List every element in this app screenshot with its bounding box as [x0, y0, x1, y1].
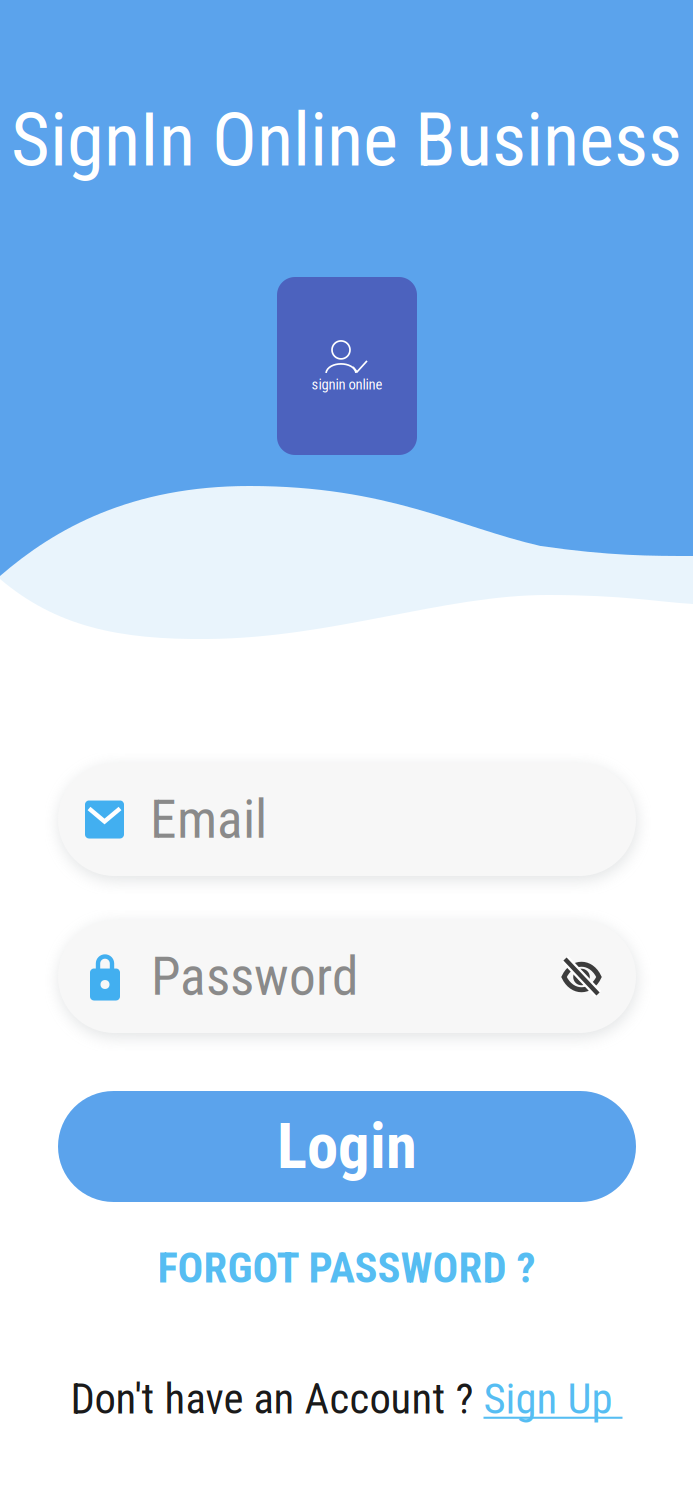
- staticText: SignIn Online Business: [11, 96, 682, 184]
- staticText: signin online: [311, 376, 382, 393]
- button[interactable]: FORGOT PASSWORD ?: [0, 1245, 693, 1291]
- button[interactable]: Password: [58, 920, 636, 1033]
- staticText: Login: [277, 1110, 417, 1183]
- staticText: Email: [150, 788, 267, 851]
- staticText: Don't have an Account ?: [70, 1374, 483, 1424]
- staticText: Password: [151, 945, 358, 1008]
- button[interactable]: Login: [58, 1091, 636, 1202]
- button[interactable]: Email: [58, 763, 636, 876]
- button[interactable]: Sign Up: [483, 1374, 622, 1424]
- staticText: FORGOT PASSWORD ?: [157, 1243, 535, 1293]
- staticText: Sign Up: [483, 1374, 622, 1424]
